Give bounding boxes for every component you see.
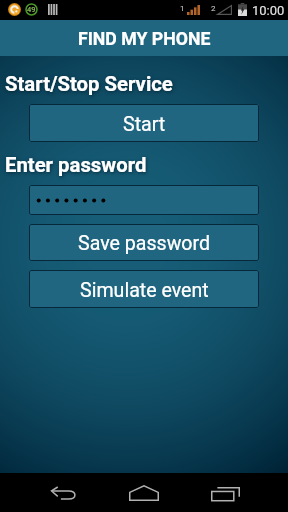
- button[interactable]: [29, 185, 259, 215]
- button[interactable]: Start: [29, 104, 259, 142]
- staticText: 49: [27, 5, 36, 14]
- staticText: Start/Stop Service: [5, 72, 173, 96]
- staticText: 10:00: [252, 3, 285, 18]
- button[interactable]: Home: [120, 473, 168, 512]
- staticText: Save password: [78, 232, 211, 255]
- button[interactable]: Simulate event: [29, 270, 259, 308]
- staticText: Start: [123, 113, 166, 136]
- button[interactable]: Start: [29, 104, 259, 142]
- staticText: FIND MY PHONE: [78, 29, 211, 50]
- staticText: 2: [211, 4, 216, 13]
- button[interactable]: Back: [40, 473, 88, 512]
- staticText: Simulate event: [80, 279, 209, 302]
- button[interactable]: Save password: [29, 224, 259, 261]
- button[interactable]: Recent apps: [201, 473, 249, 512]
- staticText: Enter password: [5, 153, 147, 177]
- staticText: 1: [180, 4, 185, 13]
